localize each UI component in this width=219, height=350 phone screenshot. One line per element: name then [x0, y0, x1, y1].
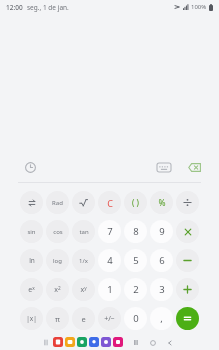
button[interactable]: 0	[124, 307, 147, 330]
staticText: 5	[133, 254, 139, 267]
staticText: 100%	[191, 3, 207, 11]
button[interactable]: tan	[72, 220, 95, 243]
button[interactable]: ,	[150, 307, 173, 330]
button[interactable]: Home	[147, 337, 158, 348]
button[interactable]: 9	[150, 220, 173, 243]
button[interactable]: π	[46, 307, 69, 330]
staticText: 0	[133, 312, 139, 325]
button[interactable]: Back	[164, 337, 175, 348]
button[interactable]: 4	[98, 249, 121, 272]
button[interactable]: 2	[124, 278, 147, 301]
staticText: seg., 1 de jan.	[27, 3, 69, 12]
button[interactable]: App 3	[77, 337, 87, 347]
staticText: e	[81, 314, 86, 324]
staticText: ex	[28, 285, 35, 295]
button[interactable]: Divide	[176, 191, 199, 214]
staticText: %	[158, 197, 166, 209]
staticText: 3	[159, 283, 165, 296]
button[interactable]: 7	[98, 220, 121, 243]
staticText: 6	[159, 254, 165, 267]
staticText: 7	[107, 225, 113, 238]
button[interactable]: App 1	[53, 337, 63, 347]
button[interactable]: Square root	[72, 191, 95, 214]
staticText: ( )	[132, 197, 139, 208]
button[interactable]: Minus	[176, 249, 199, 272]
button[interactable]: cos	[46, 220, 69, 243]
staticText: 4	[107, 254, 113, 267]
button[interactable]: App 6	[113, 337, 123, 347]
button[interactable]: 8	[124, 220, 147, 243]
staticText: 1	[107, 283, 113, 296]
button[interactable]: 6	[150, 249, 173, 272]
button[interactable]: App 4	[89, 337, 99, 347]
button[interactable]: |x|	[20, 307, 43, 330]
button[interactable]: App 2	[65, 337, 75, 347]
staticText: cos	[53, 228, 63, 236]
button[interactable]: e	[72, 307, 95, 330]
staticText: 12:00	[6, 3, 23, 12]
button[interactable]: %	[150, 191, 173, 214]
staticText: sin	[27, 228, 36, 236]
staticText: 2	[133, 283, 139, 296]
staticText: 8	[133, 225, 139, 238]
button[interactable]: xy	[72, 278, 95, 301]
button[interactable]: sin	[20, 220, 43, 243]
staticText: |x|	[26, 314, 37, 323]
staticText: log	[53, 257, 62, 265]
staticText: 1/x	[79, 257, 88, 265]
button[interactable]: Toggle mode	[20, 191, 43, 214]
staticText: C	[107, 197, 113, 209]
button[interactable]: log	[46, 249, 69, 272]
button[interactable]: Multiply	[176, 220, 199, 243]
staticText: x2	[54, 285, 61, 295]
button[interactable]: App 5	[101, 337, 111, 347]
button[interactable]: 3	[150, 278, 173, 301]
button[interactable]: History	[20, 157, 40, 177]
button[interactable]: ( )	[124, 191, 147, 214]
staticText: +/−	[104, 314, 115, 324]
staticText: tan	[79, 228, 89, 236]
button[interactable]: C	[98, 191, 121, 214]
button[interactable]: Equals	[176, 307, 199, 330]
staticText: ln	[29, 256, 35, 265]
staticText: 9	[159, 225, 165, 238]
button[interactable]: ex	[20, 278, 43, 301]
button[interactable]: +/−	[98, 307, 121, 330]
staticText: Rad	[52, 199, 63, 207]
button[interactable]: Backspace	[183, 156, 205, 178]
staticText: ,	[160, 312, 163, 325]
button[interactable]: Recents	[130, 337, 141, 348]
button[interactable]: Rad	[46, 191, 69, 214]
button[interactable]: 1	[98, 278, 121, 301]
staticText: xy	[80, 285, 87, 295]
button[interactable]: Plus	[176, 278, 199, 301]
button[interactable]: 5	[124, 249, 147, 272]
button[interactable]: ln	[20, 249, 43, 272]
button[interactable]: Keyboard	[153, 156, 175, 178]
button[interactable]: 1/x	[72, 249, 95, 272]
button[interactable]: x2	[46, 278, 69, 301]
staticText: π	[55, 314, 60, 324]
